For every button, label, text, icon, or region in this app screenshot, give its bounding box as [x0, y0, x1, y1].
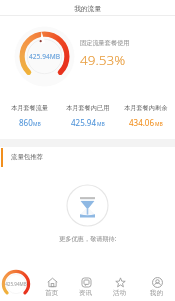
staticText: 更多优惠，敬请期待:: [59, 234, 117, 242]
staticText: 860: [19, 117, 33, 128]
staticText: 活动: [113, 289, 127, 297]
staticText: 本月套餐内剩余: [124, 104, 168, 112]
staticText: MB: [155, 121, 163, 128]
staticText: 49.53%: [80, 51, 126, 69]
staticText: 流量包推荐: [11, 153, 43, 161]
staticText: 首页: [45, 289, 59, 297]
staticText: 425.94: [71, 117, 97, 128]
staticText: MB: [97, 121, 105, 128]
staticText: 固定流量套餐使用: [80, 39, 130, 47]
staticText: 本月套餐内已用: [66, 104, 110, 112]
button[interactable]: 我的: [142, 272, 172, 299]
staticText: MB: [33, 121, 41, 128]
staticText: 425.94MB: [29, 52, 60, 61]
staticText: 资讯: [79, 289, 93, 297]
staticText: 我的: [150, 289, 164, 297]
button[interactable]: 首页: [37, 272, 67, 299]
button[interactable]: 资讯: [71, 272, 101, 299]
staticText: 434.06: [129, 117, 155, 128]
staticText: 425.94MB: [5, 281, 27, 287]
staticText: 本月套餐流量: [11, 104, 49, 112]
staticText: 我的流量: [74, 4, 102, 13]
button[interactable]: 活动: [105, 272, 135, 299]
